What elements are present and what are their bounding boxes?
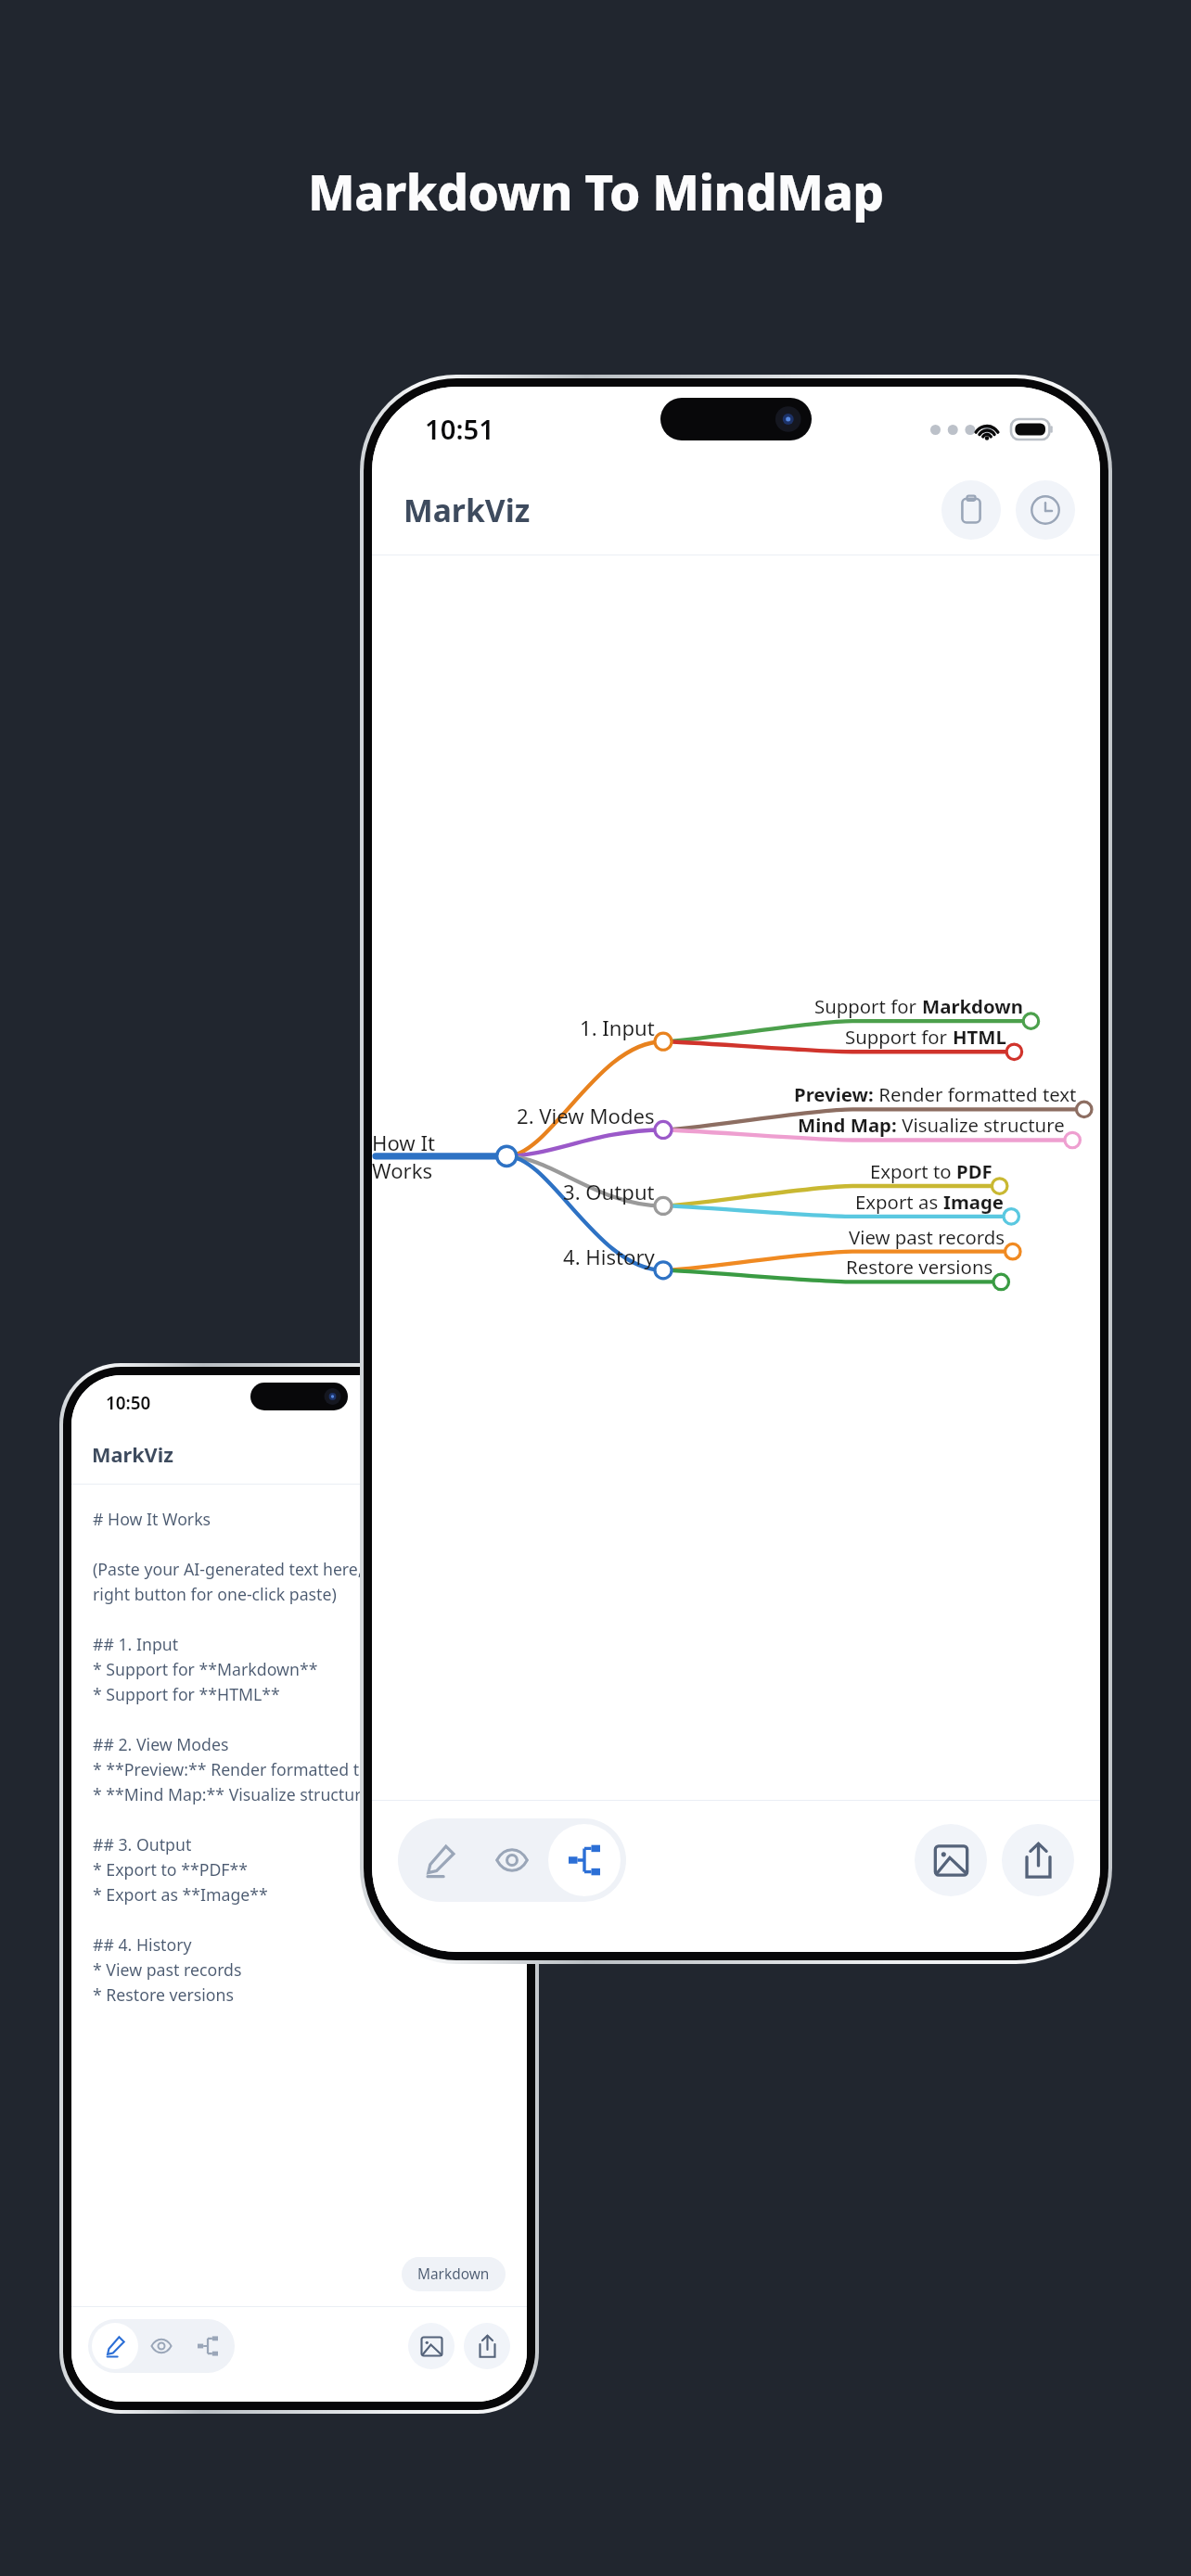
staticText: 10:51: [425, 411, 494, 448]
staticText: Visualize structure: [897, 1112, 1065, 1138]
button[interactable]: Edit: [403, 1824, 476, 1896]
staticText: Restore versions: [846, 1254, 993, 1280]
button[interactable]: Share: [1002, 1824, 1074, 1896]
staticText: Render formatted text: [874, 1081, 1077, 1107]
staticText: ## 1. Input: [93, 1633, 179, 1655]
button[interactable]: Mind map: [548, 1824, 621, 1896]
staticText: ## 3. Output: [93, 1833, 192, 1855]
staticText: * Support for **Markdown**: [93, 1658, 318, 1680]
staticText: * Restore versions: [93, 1983, 234, 2006]
staticText: Support for: [814, 993, 922, 1019]
staticText: Image: [943, 1189, 1004, 1215]
staticText: * Export to **PDF**: [93, 1858, 249, 1881]
button[interactable]: Export image: [915, 1824, 987, 1896]
staticText: Export to: [870, 1158, 956, 1184]
button[interactable]: Preview: [476, 1824, 548, 1896]
button[interactable]: Share: [464, 2323, 510, 2369]
staticText: ## 4. History: [93, 1933, 192, 1956]
button[interactable]: History: [1016, 480, 1075, 540]
staticText: Markdown To MindMap: [308, 158, 884, 224]
staticText: How It Works: [372, 1129, 498, 1184]
staticText: * Export as **Image**: [93, 1883, 268, 1906]
staticText: 2. View Modes: [517, 1102, 655, 1129]
staticText: HTML: [953, 1024, 1006, 1050]
staticText: right button for one-click paste): [93, 1583, 337, 1605]
staticText: Markdown: [922, 993, 1023, 1019]
button[interactable]: Paste from clipboard: [941, 480, 1001, 540]
button[interactable]: Export image: [408, 2323, 455, 2369]
staticText: View past records: [849, 1224, 1005, 1250]
button[interactable]: Mind map: [185, 2323, 231, 2369]
staticText: * Support for **HTML**: [93, 1683, 280, 1705]
button[interactable]: Edit: [92, 2323, 138, 2369]
staticText: 4. History: [563, 1243, 655, 1270]
staticText: Markdown: [417, 2264, 490, 2284]
staticText: (Paste your AI-generated text here, or u…: [93, 1558, 451, 1580]
staticText: Mind Map:: [798, 1112, 897, 1138]
staticText: 1. Input: [580, 1014, 655, 1041]
staticText: * **Preview:** Render formatted text: [93, 1758, 383, 1780]
staticText: * View past records: [93, 1958, 242, 1981]
staticText: 3. Output: [563, 1178, 655, 1205]
staticText: MarkViz: [92, 1441, 173, 1469]
staticText: * **Mind Map:** Visualize structure: [93, 1783, 371, 1805]
staticText: Preview:: [794, 1081, 874, 1107]
staticText: # How It Works: [93, 1508, 211, 1530]
staticText: 10:50: [106, 1391, 151, 1415]
staticText: ## 2. View Modes: [93, 1733, 229, 1755]
staticText: Support for: [845, 1024, 953, 1050]
staticText: MarkViz: [403, 489, 531, 531]
button[interactable]: Preview: [138, 2323, 185, 2369]
staticText: PDF: [956, 1158, 992, 1184]
staticText: Export as: [855, 1189, 943, 1215]
